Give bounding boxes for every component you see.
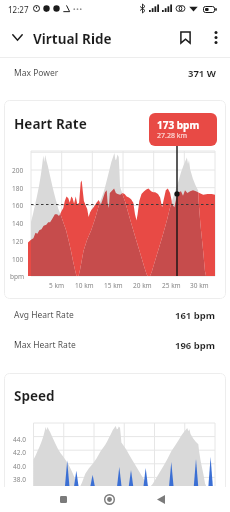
staticText: 38.0 — [13, 475, 26, 484]
staticText: 10 km — [75, 281, 94, 290]
staticText: bpm — [10, 272, 25, 281]
button[interactable]: Back — [148, 487, 173, 512]
staticText: 27.28 km — [157, 131, 187, 141]
staticText: 25 km — [162, 281, 181, 290]
button[interactable]: Bookmark — [173, 25, 198, 50]
staticText: Virtual Ride — [33, 30, 112, 48]
staticText: 371 W — [188, 67, 216, 80]
staticText: 20 km — [133, 281, 152, 290]
staticText: 120 — [12, 237, 24, 246]
staticText: 180 — [12, 184, 24, 193]
button[interactable]: Home — [97, 487, 122, 512]
staticText: 15 km — [104, 281, 123, 290]
staticText: 40.0 — [13, 462, 26, 471]
staticText: Max Heart Rate — [14, 339, 76, 351]
staticText: Speed — [14, 387, 55, 405]
staticText: Max Power — [14, 67, 59, 79]
staticText: Avg Heart Rate — [14, 309, 74, 321]
button[interactable]: Max Heart Rate — [0, 330, 230, 360]
staticText: 140 — [12, 219, 24, 228]
button[interactable]: Collapse — [5, 25, 30, 50]
staticText: 160 — [12, 201, 24, 210]
staticText: 5 km — [49, 281, 64, 290]
button[interactable]: 173 bpm — [149, 113, 217, 146]
staticText: 196 bpm — [175, 339, 216, 352]
staticText: 30 km — [190, 281, 209, 290]
button[interactable]: Max Power — [0, 58, 230, 88]
staticText: 12:27 — [8, 4, 29, 15]
staticText: 161 bpm — [175, 309, 216, 322]
staticText: 44.0 — [13, 435, 26, 444]
button[interactable]: More options — [203, 25, 228, 50]
staticText: Heart Rate — [14, 115, 87, 133]
staticText: 200 — [12, 166, 24, 175]
button[interactable]: Avg Heart Rate — [0, 300, 230, 330]
staticText: 42.0 — [13, 448, 26, 457]
staticText: 100 — [12, 255, 24, 264]
staticText: 173 bpm — [157, 118, 200, 132]
button[interactable]: Recents — [51, 487, 76, 512]
